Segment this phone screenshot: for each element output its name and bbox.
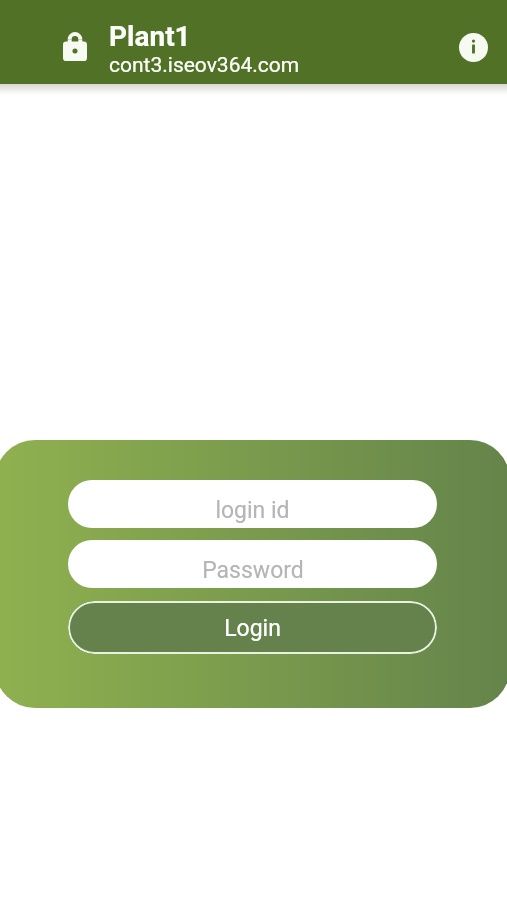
button[interactable]: Plant1 (50, 20, 300, 78)
button[interactable]: Page info (454, 28, 492, 66)
button[interactable]: login id (68, 480, 437, 528)
button[interactable]: Password (68, 540, 437, 588)
staticText: Login (224, 615, 281, 642)
staticText: login id (215, 497, 290, 524)
staticText: Password (202, 557, 304, 584)
button[interactable]: Login (68, 601, 437, 654)
staticText: Plant1 (109, 20, 191, 53)
staticText: cont3.iseov364.com (109, 53, 300, 78)
